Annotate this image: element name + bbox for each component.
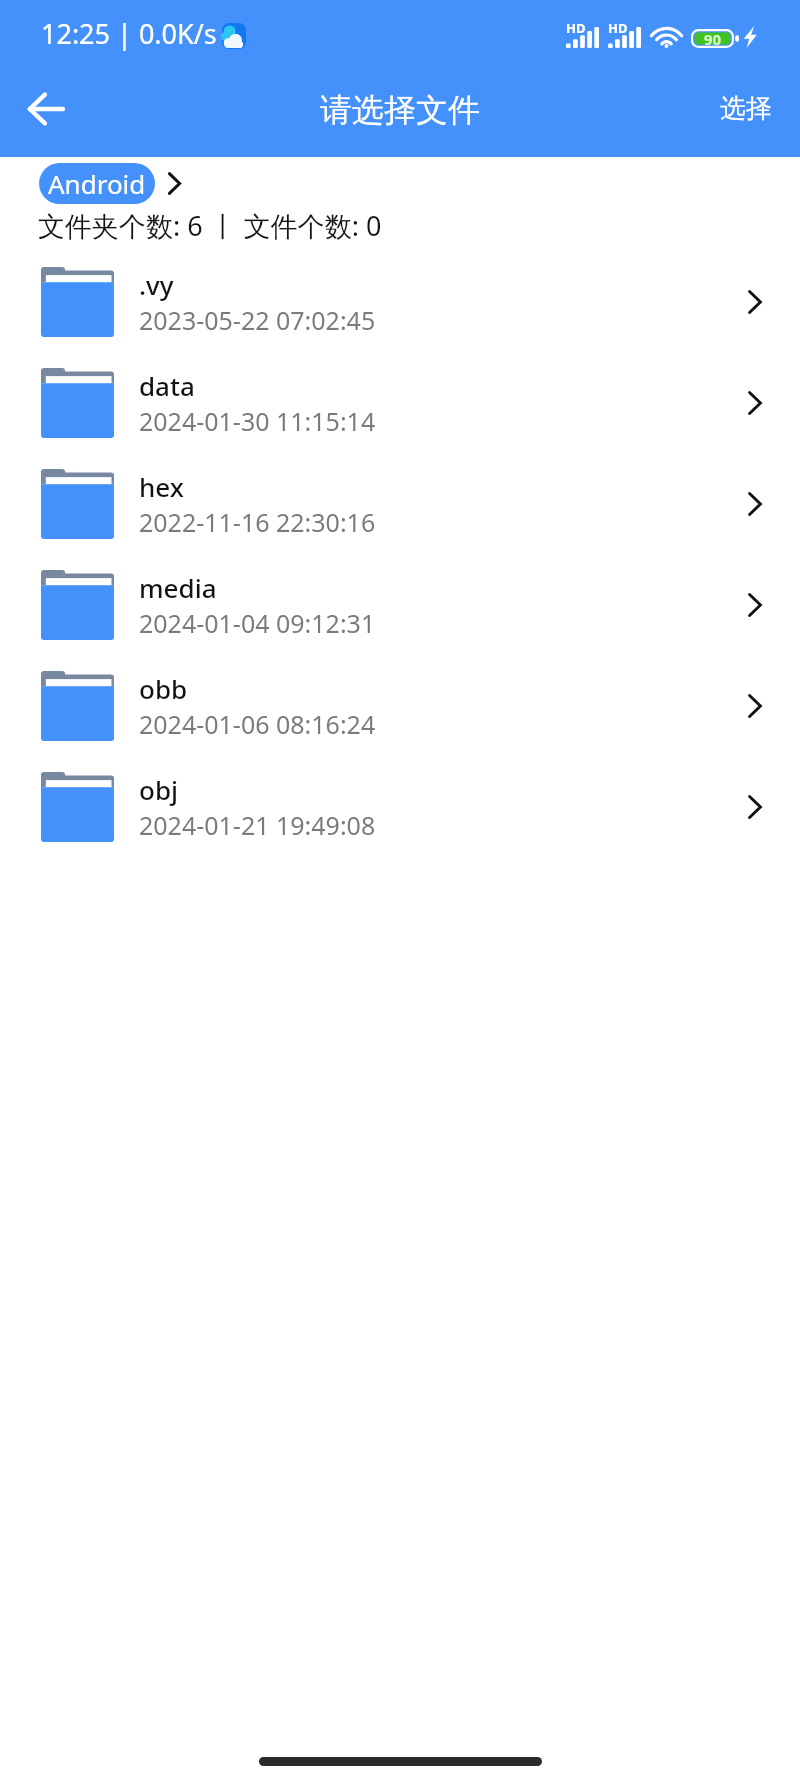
staticText: HD <box>566 19 586 37</box>
staticText: 90 <box>704 29 722 48</box>
button[interactable]: Open data <box>725 373 785 433</box>
staticText: HD <box>608 19 628 37</box>
button[interactable]: hex <box>0 453 800 554</box>
staticText: obb <box>139 671 188 706</box>
button[interactable]: Android <box>39 163 155 204</box>
staticText: 2022-11-16 22:30:16 <box>139 505 376 539</box>
button[interactable]: Back <box>15 78 77 140</box>
button[interactable]: Open media <box>725 575 785 635</box>
staticText: .vy <box>139 267 174 302</box>
staticText: 选择 <box>720 92 772 125</box>
button[interactable]: data <box>0 352 800 453</box>
staticText: hex <box>139 469 184 504</box>
staticText: 2024-01-30 11:15:14 <box>139 404 376 438</box>
button[interactable]: obb <box>0 655 800 756</box>
staticText: 2024-01-04 09:12:31 <box>139 606 376 640</box>
staticText: 2024-01-21 19:49:08 <box>139 808 376 842</box>
staticText: Android <box>48 166 146 201</box>
button[interactable]: Open obb <box>725 676 785 736</box>
staticText: 2024-01-06 08:16:24 <box>139 707 376 741</box>
staticText: 12:25 | 0.0K/s <box>41 15 217 52</box>
staticText: obj <box>139 772 179 807</box>
staticText: 文件夹个数: 6 丨 文件个数: 0 <box>38 207 382 244</box>
button[interactable]: media <box>0 554 800 655</box>
button[interactable]: Open .vy <box>725 272 785 332</box>
button[interactable]: .vy <box>0 251 800 352</box>
button[interactable]: Open obj <box>725 777 785 837</box>
staticText: media <box>139 570 217 605</box>
staticText: 2023-05-22 07:02:45 <box>139 303 376 337</box>
staticText: 请选择文件 <box>320 90 480 130</box>
button[interactable]: obj <box>0 756 800 857</box>
button[interactable]: 选择 <box>692 78 800 139</box>
button[interactable]: Open hex <box>725 474 785 534</box>
staticText: data <box>139 368 195 403</box>
